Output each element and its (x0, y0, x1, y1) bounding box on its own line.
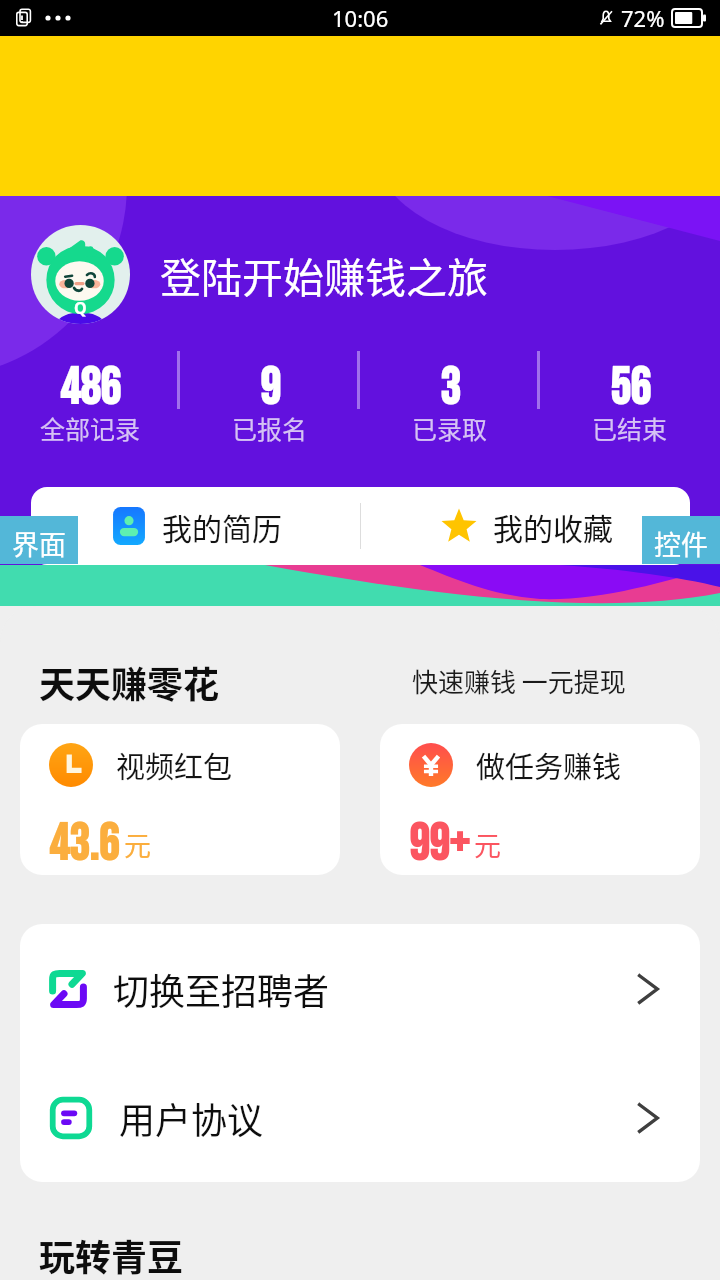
staticText: 3 (440, 359, 460, 419)
button[interactable]: 我的收藏 (361, 487, 690, 565)
staticText: 快速赚钱 一元提现 (412, 662, 626, 700)
staticText: 56 (610, 359, 650, 419)
staticText: Q (74, 297, 87, 319)
staticText: 控件 (654, 524, 708, 563)
button[interactable]: 用户协议 (20, 1053, 700, 1182)
staticText: 全部记录 (40, 410, 141, 446)
staticText: 切换至招聘者 (113, 963, 330, 1015)
staticText: 10:06 (332, 3, 389, 33)
button[interactable]: 视频红包 (20, 724, 340, 875)
button[interactable]: 切换至招聘者 (20, 924, 700, 1053)
staticText: 视频红包 (116, 744, 233, 786)
staticText: 元 (474, 825, 501, 864)
button[interactable]: 我的简历 (31, 487, 360, 565)
staticText: 做任务赚钱 (476, 744, 622, 786)
staticText: 486 (60, 359, 120, 419)
staticText: 72% (621, 3, 665, 33)
staticText: 登陆开始赚钱之旅 (160, 245, 488, 304)
staticText: 43.6 (49, 815, 119, 875)
staticText: 99+ (409, 815, 469, 875)
staticText: 我的收藏 (493, 505, 613, 548)
other: More (627, 1101, 661, 1135)
staticText: 已报名 (232, 410, 308, 446)
staticText: 我的简历 (162, 505, 282, 548)
staticText: 元 (124, 825, 151, 864)
other: More (627, 972, 661, 1006)
staticText: 界面 (12, 524, 66, 563)
staticText: 天天赚零花 (39, 656, 220, 708)
staticText: 已结束 (592, 410, 668, 446)
staticText: 9 (260, 359, 280, 419)
button[interactable]: 做任务赚钱 (380, 724, 700, 875)
staticText: 玩转青豆 (39, 1229, 184, 1280)
staticText: 已录取 (412, 410, 488, 446)
staticText: 用户协议 (119, 1092, 264, 1144)
